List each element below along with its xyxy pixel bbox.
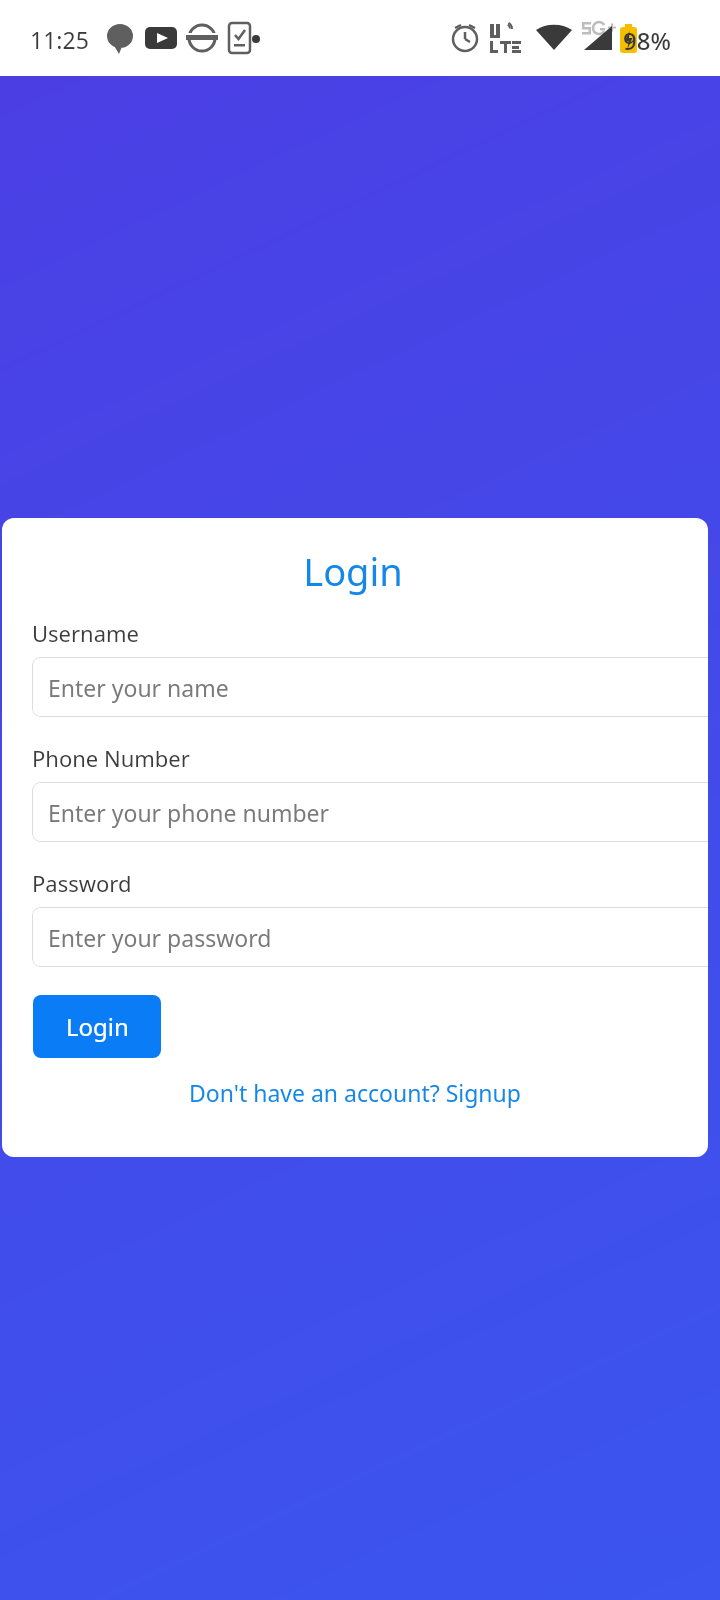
staticText: Username (32, 618, 140, 648)
staticText: 98% (623, 24, 671, 57)
button[interactable]: Enter your phone number (32, 782, 708, 842)
button[interactable]: Enter your password (32, 907, 708, 967)
staticText: Password (32, 868, 132, 898)
button[interactable]: Login (33, 995, 161, 1058)
staticText: Login (2, 545, 706, 597)
staticText: Enter your password (48, 922, 272, 953)
button[interactable]: Don't have an account? Signup (2, 1070, 708, 1114)
button[interactable]: Enter your name (32, 657, 708, 717)
staticText: Enter your phone number (48, 797, 330, 828)
staticText: Login (66, 1010, 129, 1043)
staticText: Don't have an account? Signup (189, 1077, 521, 1108)
staticText: Enter your name (48, 672, 229, 703)
staticText: Phone Number (32, 743, 190, 773)
staticText: 11:25 (30, 24, 89, 55)
